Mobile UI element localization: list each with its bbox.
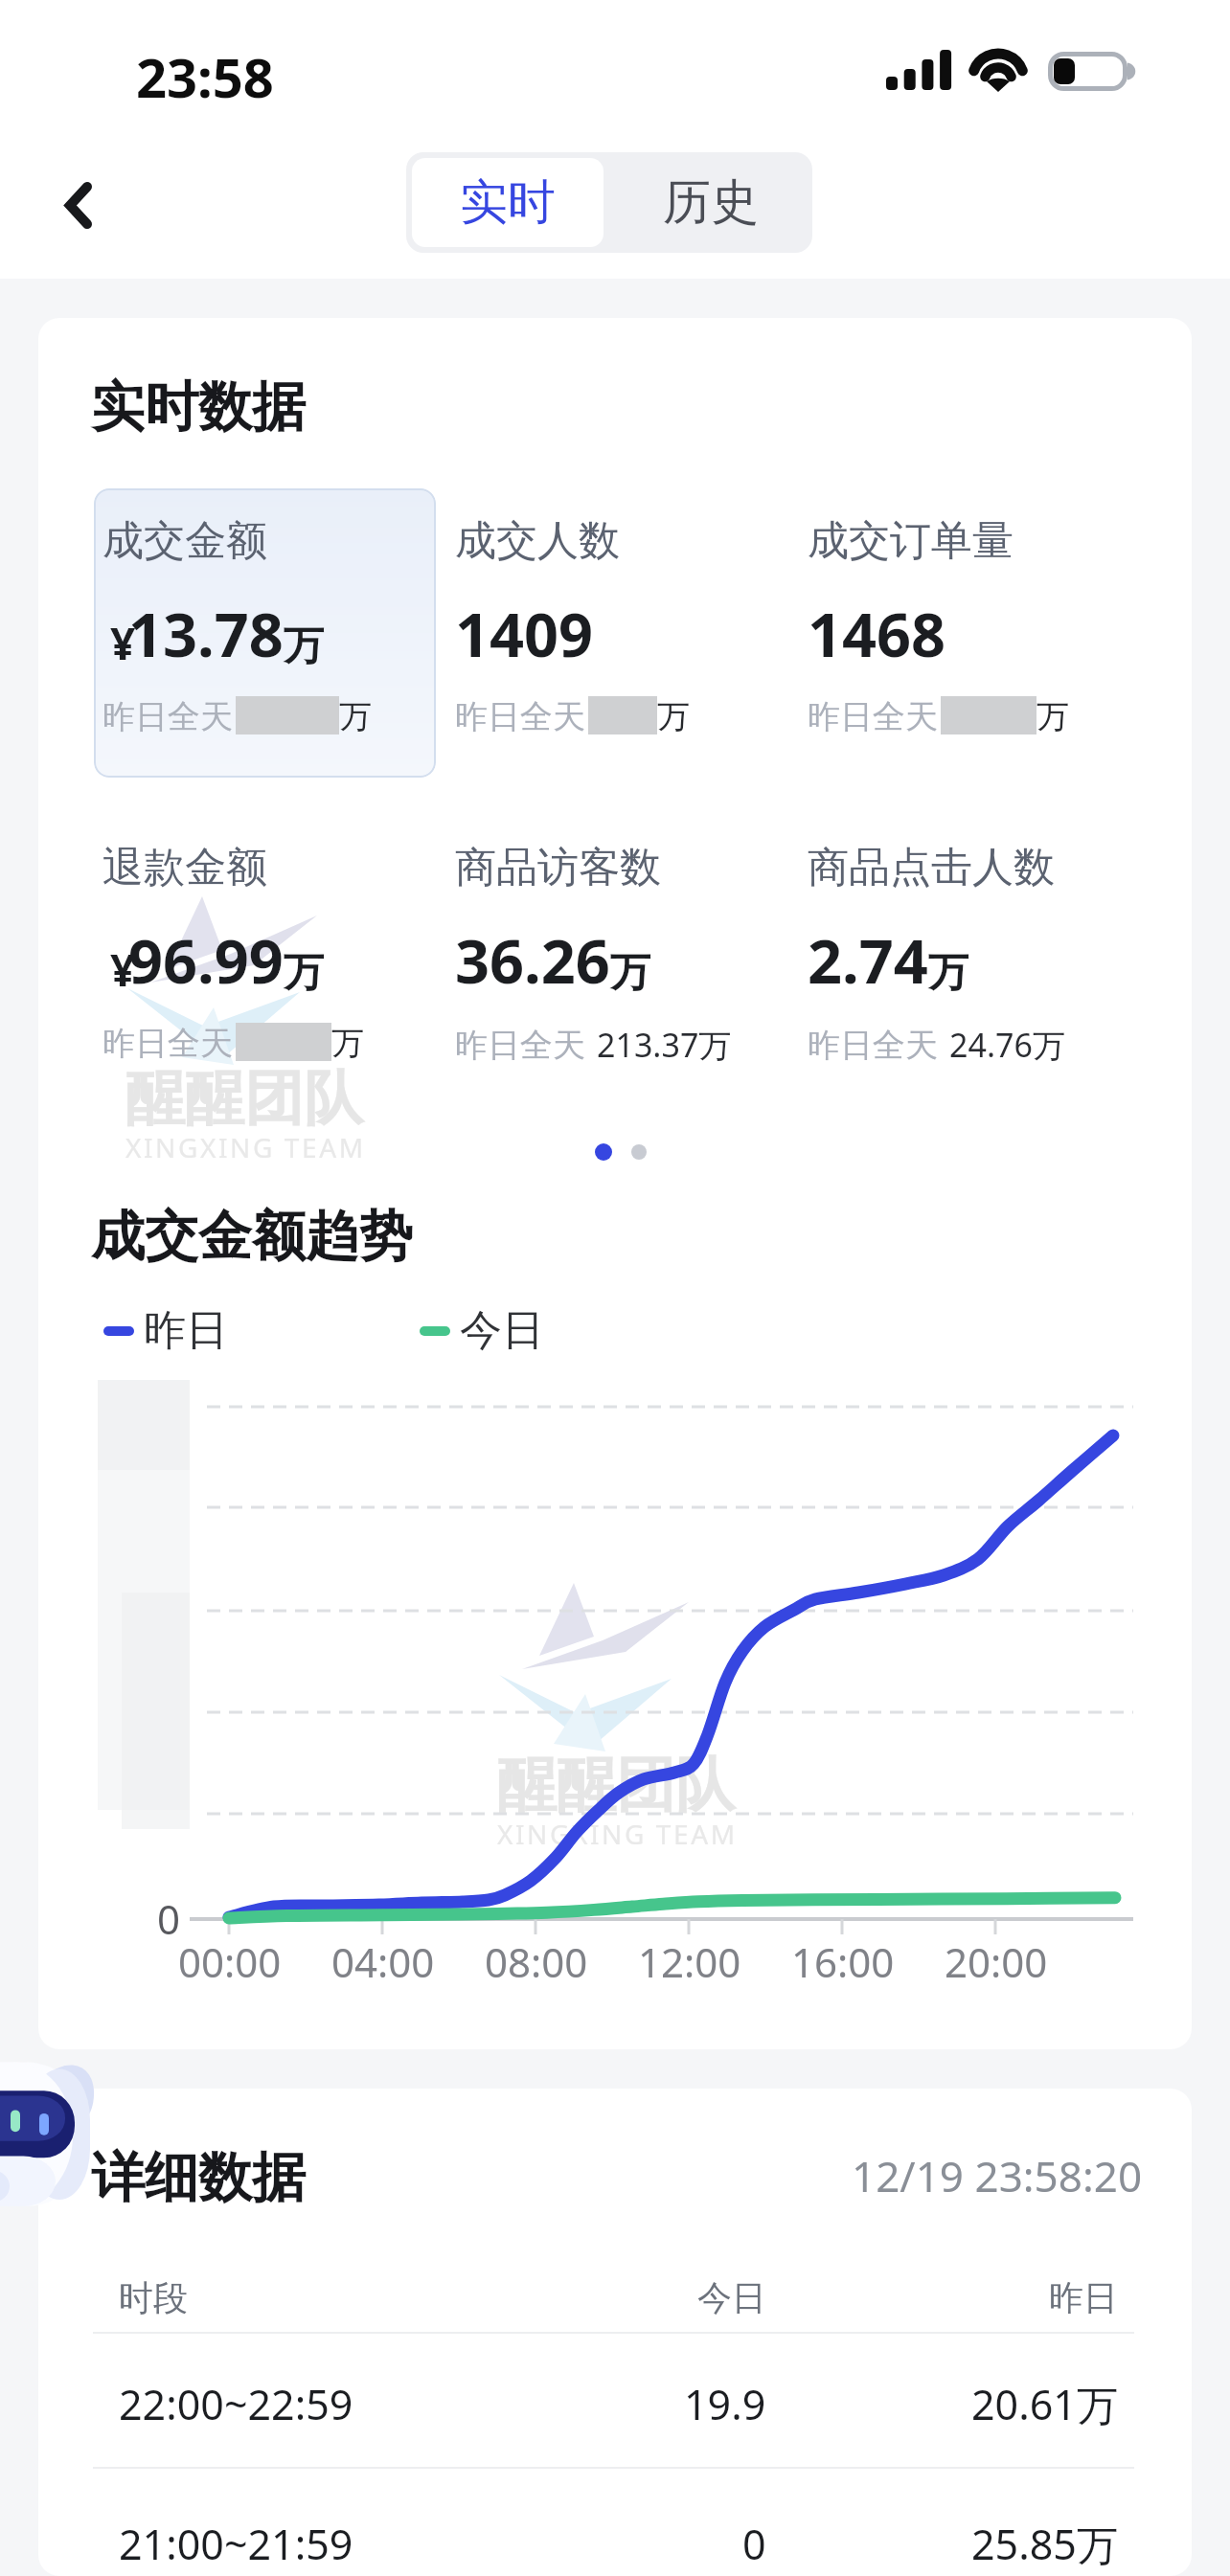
staticText: 成交金额趋势 — [91, 1203, 413, 1271]
staticText: 96.99 — [128, 919, 284, 1002]
staticText: 22:00~22:59 — [119, 2376, 353, 2432]
staticText: 万 — [1036, 696, 1069, 737]
staticText: 成交人数 — [455, 515, 620, 567]
button[interactable]: 22:00~22:59 — [38, 2356, 1192, 2452]
button[interactable]: 成交人数 — [455, 515, 798, 737]
staticText: 昨日 — [144, 1304, 228, 1357]
staticText: 商品访客数 — [455, 842, 661, 893]
staticText: 00:00 — [178, 1934, 282, 1989]
button[interactable]: AI assistant — [0, 2052, 105, 2220]
staticText: 0 — [742, 2516, 766, 2572]
staticText: 万 — [331, 1023, 364, 1064]
staticText: 实时数据 — [91, 373, 306, 441]
staticText: 万 — [339, 696, 372, 737]
staticText: 08:00 — [485, 1934, 588, 1989]
staticText: XINGXING TEAM — [497, 1816, 738, 1852]
button[interactable]: 历史 — [609, 152, 812, 253]
button[interactable]: 成交订单量 — [808, 515, 1150, 737]
button[interactable]: 商品点击人数 — [808, 842, 1150, 1067]
button[interactable]: 实时 — [412, 158, 604, 247]
staticText: 历史 — [663, 172, 759, 233]
staticText: 36.26 — [455, 919, 610, 1002]
staticText: 昨日全天 — [808, 1025, 938, 1066]
staticText: 万 — [657, 696, 690, 737]
button[interactable]: 时段 — [38, 2249, 1192, 2345]
staticText: 04:00 — [331, 1934, 435, 1989]
staticText: 13.78 — [128, 593, 284, 675]
staticText: 213.37万 — [597, 1023, 732, 1067]
staticText: 今日 — [460, 1304, 544, 1357]
staticText: 2.74 — [808, 919, 928, 1002]
staticText: 成交订单量 — [808, 515, 1014, 567]
staticText: 1468 — [808, 593, 946, 675]
button[interactable] — [94, 488, 436, 778]
staticText: 万 — [928, 948, 968, 999]
staticText: 退款金额 — [102, 842, 267, 893]
staticText: 万 — [284, 621, 324, 672]
staticText: 今日 — [697, 2276, 766, 2319]
staticText: 19.9 — [684, 2376, 766, 2432]
staticText: 昨日全天 — [102, 696, 233, 737]
staticText: 23:58 — [136, 40, 274, 113]
staticText: 20:00 — [945, 1934, 1048, 1989]
staticText: ¥ — [110, 613, 136, 673]
staticText: 20.61万 — [971, 2376, 1118, 2432]
button[interactable]: 商品访客数 — [455, 842, 798, 1067]
staticText: 12/19 23:58:20 — [852, 2147, 1143, 2204]
staticText: 16:00 — [791, 1934, 895, 1989]
staticText: 21:00~21:59 — [119, 2516, 353, 2572]
staticText: 商品点击人数 — [808, 842, 1055, 893]
staticText: 万 — [284, 948, 324, 999]
staticText: ¥ — [110, 939, 136, 1000]
staticText: 0 — [157, 1891, 181, 1946]
staticText: 昨日 — [1049, 2276, 1118, 2319]
button[interactable]: 21:00~21:59 — [38, 2496, 1192, 2576]
staticText: 昨日全天 — [808, 696, 938, 737]
staticText: 昨日全天 — [455, 696, 585, 737]
staticText: 万 — [610, 948, 650, 999]
button[interactable]: 退款金额 — [102, 842, 445, 1064]
staticText: 时段 — [119, 2276, 188, 2319]
staticText: 醒醒团队 — [497, 1748, 735, 1822]
staticText: 昨日全天 — [455, 1025, 585, 1066]
staticText: 1409 — [455, 593, 594, 675]
staticText: 实时 — [460, 172, 556, 233]
button[interactable]: 成交金额 — [102, 515, 445, 737]
staticText: 醒醒团队 — [125, 1061, 363, 1136]
staticText: 25.85万 — [971, 2516, 1118, 2572]
staticText: 昨日全天 — [102, 1023, 233, 1064]
staticText: 12:00 — [638, 1934, 741, 1989]
button[interactable]: Back — [30, 157, 125, 253]
staticText: XINGXING TEAM — [125, 1129, 366, 1165]
staticText: 成交金额 — [102, 515, 267, 567]
staticText: 24.76万 — [949, 1023, 1065, 1067]
staticText: 详细数据 — [91, 2144, 306, 2212]
